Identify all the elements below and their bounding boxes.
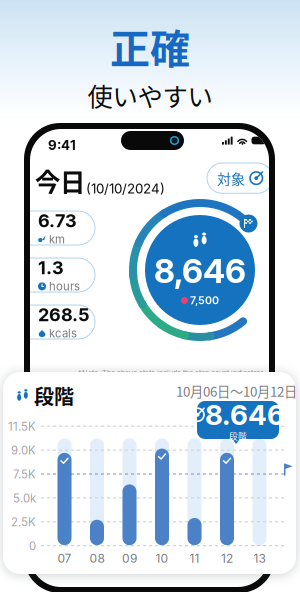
staticText: 1.3 (38, 257, 64, 279)
button[interactable]: 1.3 (8, 258, 95, 292)
staticText: 08 (89, 551, 104, 566)
staticText: 9:41 (48, 137, 76, 153)
staticText: 7,500 (190, 294, 219, 307)
staticText: 268.5 (38, 304, 90, 326)
staticText: 対象 (217, 168, 245, 188)
button[interactable]: 10月06日〜10月12日 (176, 383, 286, 399)
staticText: km (49, 232, 65, 246)
staticText: 段階 (34, 381, 74, 410)
button[interactable]: 268.5 (8, 305, 95, 339)
staticText: 7.5K (13, 467, 36, 481)
staticText: 6.73 (38, 210, 77, 232)
staticText: kcals (49, 326, 77, 340)
button[interactable]: 6.73 (8, 211, 95, 245)
staticText: 使いやすい (87, 77, 212, 114)
staticText: *Note: The above stats include the step … (78, 369, 264, 378)
staticText: 8.646 (205, 398, 285, 432)
staticText: 11 (189, 551, 199, 566)
staticText: (10/10/2024) (86, 181, 165, 197)
staticText: 10月06日〜10月12日 (176, 381, 297, 401)
staticText: 10 (155, 551, 168, 566)
staticText: 12 (221, 551, 233, 566)
staticText: 正確 (110, 17, 190, 75)
staticText: 段階 (229, 430, 247, 442)
staticText: 9.0K (11, 444, 36, 457)
staticText: 5.0k (13, 491, 36, 505)
staticText: 11.5K (8, 420, 36, 433)
staticText: 8,646 (154, 251, 246, 291)
staticText: 09 (122, 551, 137, 566)
staticText: hours (49, 279, 80, 293)
button[interactable]: 対象 (207, 163, 272, 193)
staticText: 今日 (35, 162, 85, 199)
staticText: 13 (253, 551, 265, 566)
staticText: 2.5K (11, 515, 36, 529)
staticText: 07 (57, 551, 71, 566)
staticText: 0 (29, 539, 36, 553)
